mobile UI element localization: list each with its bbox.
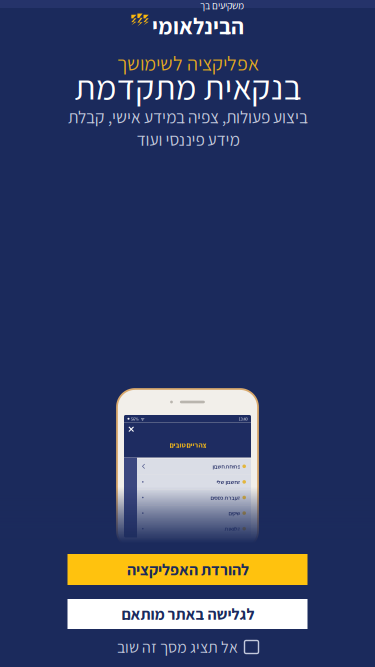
button[interactable]: להורדת האפליקציה: [67, 554, 307, 585]
staticText: צהריים טובים: [169, 440, 206, 449]
staticText: 56%: [131, 416, 139, 422]
button[interactable]: לגלישה באתר מותאם: [67, 599, 307, 629]
staticText: הלוואות: [224, 525, 240, 533]
staticText: מידע פיננסי ועוד: [136, 128, 239, 151]
button[interactable]: אל תציג מסך זה שוב: [116, 637, 258, 657]
staticText: 13:40: [238, 416, 247, 422]
staticText: אל תציג מסך זה שוב: [116, 636, 236, 657]
staticText: החשבון שלי: [216, 478, 240, 486]
staticText: בנקאית מתקדמת: [74, 64, 301, 109]
staticText: פתיחת חשבון: [212, 462, 240, 470]
staticText: הבינלאומי: [151, 11, 243, 41]
staticText: לגלישה באתר מותאם: [121, 603, 254, 624]
staticText: להורדת האפליקציה: [126, 559, 248, 580]
staticText: אפליקציה לשימושך: [116, 50, 258, 76]
staticText: ᯤ: [140, 416, 144, 422]
staticText: משקיעים בך: [199, 0, 243, 12]
staticText: העברת כספים: [210, 494, 240, 501]
staticText: ביצוע פעולות, צפיה במידע אישי, קבלת: [67, 105, 307, 128]
staticText: שיקים: [228, 509, 240, 517]
